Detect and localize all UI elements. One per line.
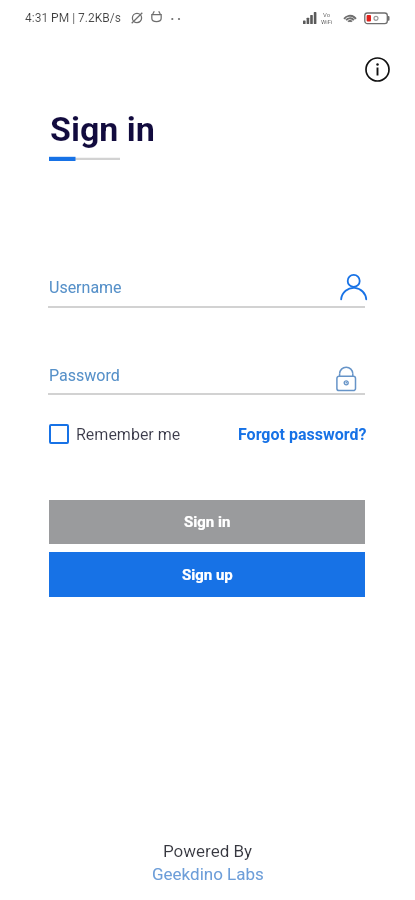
staticText: Sign up [182,566,233,584]
button[interactable]: Geekdino Labs [152,864,264,884]
button[interactable]: Information [353,45,401,93]
button[interactable]: Remember me [49,422,181,446]
staticText: Username [49,278,122,297]
staticText: Geekdino Labs [152,864,264,884]
button[interactable]: Sign up [49,552,365,597]
staticText: Remember me [76,425,181,444]
button[interactable] [48,266,365,310]
staticText: WiFi [321,18,333,25]
staticText: Vo [323,11,331,18]
staticText: Forgot password? [238,425,367,444]
button[interactable]: Forgot password? [238,422,367,446]
staticText: Password [49,366,120,385]
other: Password [336,364,357,391]
button[interactable] [48,355,365,395]
button[interactable]: Sign in [49,500,365,544]
staticText: Powered By [163,841,253,861]
other: Username [341,274,367,300]
staticText: Sign in [50,109,155,149]
staticText: 4:31 PM | 7.2KB/s [25,11,121,25]
staticText: Sign in [184,513,231,531]
